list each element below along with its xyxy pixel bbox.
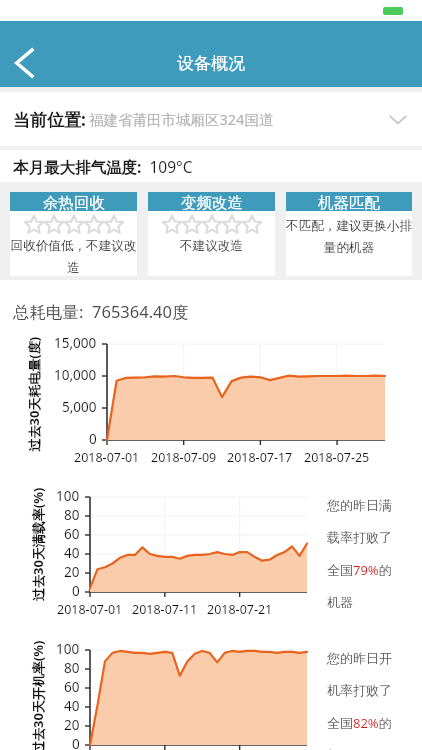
button[interactable]: 机器匹配 bbox=[286, 192, 412, 276]
button[interactable]: 当前位置: bbox=[0, 92, 422, 146]
staticText: 2018-07-21 bbox=[207, 601, 273, 618]
staticText: 不建议改造 bbox=[148, 238, 275, 254]
staticText: 0 bbox=[72, 735, 80, 750]
staticText: 15,000 bbox=[54, 334, 97, 352]
staticText: 0 bbox=[72, 582, 80, 600]
staticText: 余热回收 bbox=[43, 193, 105, 212]
staticText: 40 bbox=[64, 697, 80, 715]
staticText: 不匹配，建议更换小排量的机器 bbox=[286, 218, 412, 256]
staticText: 100 bbox=[56, 640, 80, 658]
staticText: 10,000 bbox=[54, 366, 97, 384]
button[interactable]: Back bbox=[1, 39, 49, 87]
staticText: 当前位置: bbox=[13, 108, 86, 131]
staticText: 20 bbox=[64, 716, 80, 734]
staticText: 2018-07-11 bbox=[132, 601, 198, 618]
staticText: 80 bbox=[64, 506, 80, 524]
staticText: 您的昨日满载率打败了全国79%的机器 bbox=[327, 497, 393, 611]
staticText: 回收价值低，不建议改造 bbox=[10, 238, 137, 276]
staticText: 2018-07-17 bbox=[227, 449, 293, 466]
staticText: 20 bbox=[64, 563, 80, 581]
staticText: 您的昨日开机率打败了全国82%的机器 bbox=[327, 650, 393, 750]
staticText: 60 bbox=[64, 678, 80, 696]
staticText: 80 bbox=[64, 659, 80, 677]
button[interactable]: 余热回收 bbox=[10, 192, 137, 276]
staticText: 0 bbox=[89, 430, 97, 448]
staticText: 过去30天满载率(%) bbox=[29, 487, 47, 601]
staticText: 机器匹配 bbox=[318, 193, 380, 212]
staticText: 设备概况 bbox=[177, 53, 245, 74]
staticText: 变频改造 bbox=[181, 193, 243, 212]
staticText: 本月最大排气温度: 109°C bbox=[13, 156, 193, 177]
staticText: 过去30天耗电量(度) bbox=[24, 336, 42, 451]
staticText: 2018-07-09 bbox=[151, 449, 217, 466]
staticText: 5,000 bbox=[62, 398, 97, 416]
staticText: 2018-07-01 bbox=[74, 449, 140, 466]
staticText: 2018-07-25 bbox=[304, 449, 370, 466]
staticText: 过去30天开机率(%) bbox=[29, 640, 47, 750]
staticText: 总耗电量: 765364.40度 bbox=[13, 300, 189, 323]
staticText: 40 bbox=[64, 544, 80, 562]
staticText: 福建省莆田市城厢区324国道 bbox=[89, 109, 274, 129]
staticText: 60 bbox=[64, 525, 80, 543]
button[interactable]: Expand location bbox=[376, 97, 420, 141]
staticText: 100 bbox=[56, 487, 80, 505]
button[interactable]: 变频改造 bbox=[148, 192, 275, 276]
staticText: 2018-07-01 bbox=[57, 601, 123, 618]
